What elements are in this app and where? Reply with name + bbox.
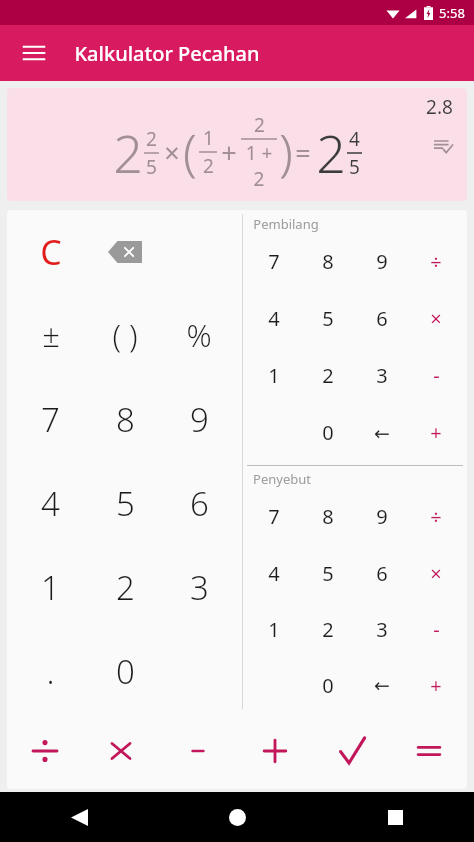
button[interactable]: Plus (236, 713, 313, 789)
button[interactable]: + (409, 657, 463, 713)
button[interactable]: . (13, 629, 88, 713)
staticText: 8 (322, 503, 334, 530)
staticText: + (221, 134, 237, 171)
staticText: 1 (268, 362, 280, 389)
staticText: 0 (322, 419, 334, 446)
button[interactable]: - (409, 347, 463, 404)
button[interactable]: 6 (162, 461, 236, 545)
staticText: % (186, 314, 212, 356)
staticText: - (433, 362, 440, 389)
staticText: 4 (268, 305, 280, 332)
staticText: 7 (41, 397, 60, 442)
staticText: - (433, 616, 440, 643)
button[interactable]: 2 (88, 545, 162, 629)
button[interactable]: 8 (301, 488, 355, 545)
button[interactable]: C (13, 210, 88, 293)
button[interactable]: 6 (355, 290, 409, 347)
button[interactable]: 0 (301, 404, 355, 461)
button[interactable]: 8 (88, 377, 162, 461)
staticText: 4 (349, 126, 360, 152)
button[interactable]: ( ) (88, 293, 162, 377)
staticText: × (430, 560, 442, 587)
button[interactable]: % (162, 293, 236, 377)
staticText: 2 (203, 153, 214, 179)
button[interactable]: ± (13, 293, 88, 377)
button[interactable]: 6 (355, 545, 409, 601)
button[interactable]: 2.8 (7, 88, 467, 201)
button[interactable]: × (409, 545, 463, 601)
button[interactable]: 2 (301, 601, 355, 657)
staticText: 0 (116, 649, 135, 694)
staticText: 1 (41, 565, 60, 610)
button[interactable]: ← (355, 404, 409, 461)
staticText: 3 (190, 565, 209, 610)
button[interactable]: 5 (301, 545, 355, 601)
staticText: 5 (349, 154, 360, 180)
button[interactable]: × (409, 290, 463, 347)
button[interactable]: 1 (247, 601, 301, 657)
button[interactable]: 5 (88, 461, 162, 545)
staticText: 4 (41, 481, 60, 526)
staticText: 5:58 (439, 4, 465, 22)
button[interactable]: 2 (301, 347, 355, 404)
button[interactable]: Confirm (313, 713, 390, 789)
staticText: 3 (376, 362, 388, 389)
button[interactable]: Divide (7, 713, 83, 789)
button[interactable]: + (409, 404, 463, 461)
button[interactable]: 7 (247, 233, 301, 290)
button[interactable]: 1 (247, 347, 301, 404)
staticText: 2 (322, 362, 334, 389)
staticText: 9 (376, 248, 388, 275)
button[interactable]: Multiply (83, 713, 159, 789)
button[interactable]: 1 (13, 545, 88, 629)
button[interactable]: Minus (159, 713, 236, 789)
staticText: . (46, 649, 55, 694)
staticText: 1 (268, 616, 280, 643)
staticText: 2 (113, 117, 143, 188)
button[interactable]: - (409, 601, 463, 657)
button[interactable]: 0 (88, 629, 162, 713)
staticText: 6 (376, 560, 388, 587)
button[interactable]: 4 (13, 461, 88, 545)
button[interactable]: 3 (162, 545, 236, 629)
staticText: ) (279, 118, 293, 186)
button[interactable]: Back (0, 792, 158, 842)
staticText: 5 (322, 560, 334, 587)
button[interactable]: Backspace (88, 210, 162, 293)
button[interactable]: 7 (247, 488, 301, 545)
staticText: ( (183, 118, 197, 186)
staticText: 2 (316, 117, 346, 188)
button[interactable]: ÷ (409, 233, 463, 290)
button[interactable]: 3 (355, 601, 409, 657)
button[interactable]: 9 (355, 233, 409, 290)
button[interactable]: 7 (13, 377, 88, 461)
button[interactable]: ÷ (409, 488, 463, 545)
button[interactable]: 9 (355, 488, 409, 545)
staticText: 8 (116, 397, 135, 442)
staticText: × (430, 305, 442, 332)
button[interactable]: 4 (247, 290, 301, 347)
staticText: 9 (190, 397, 209, 442)
button[interactable]: Show calculation steps (425, 127, 461, 163)
button[interactable]: ← (355, 657, 409, 713)
button[interactable]: 5 (301, 290, 355, 347)
button[interactable]: 4 (247, 545, 301, 601)
button[interactable]: 9 (162, 377, 236, 461)
staticText: 2 (146, 126, 157, 152)
staticText: ÷ (430, 503, 442, 530)
staticText: 7 (268, 248, 280, 275)
staticText: 6 (190, 481, 209, 526)
button[interactable]: Equals (390, 713, 467, 789)
button[interactable]: 3 (355, 347, 409, 404)
button[interactable]: Home (158, 792, 316, 842)
button[interactable]: Open navigation menu (10, 29, 58, 77)
button[interactable]: Recent apps (316, 792, 474, 842)
staticText: C (40, 229, 62, 275)
button[interactable]: 8 (301, 233, 355, 290)
staticText: 3 (376, 616, 388, 643)
staticText: + (430, 672, 442, 699)
button[interactable]: 0 (301, 657, 355, 713)
staticText: 6 (376, 305, 388, 332)
staticText: + (430, 419, 442, 446)
staticText: 7 (268, 503, 280, 530)
